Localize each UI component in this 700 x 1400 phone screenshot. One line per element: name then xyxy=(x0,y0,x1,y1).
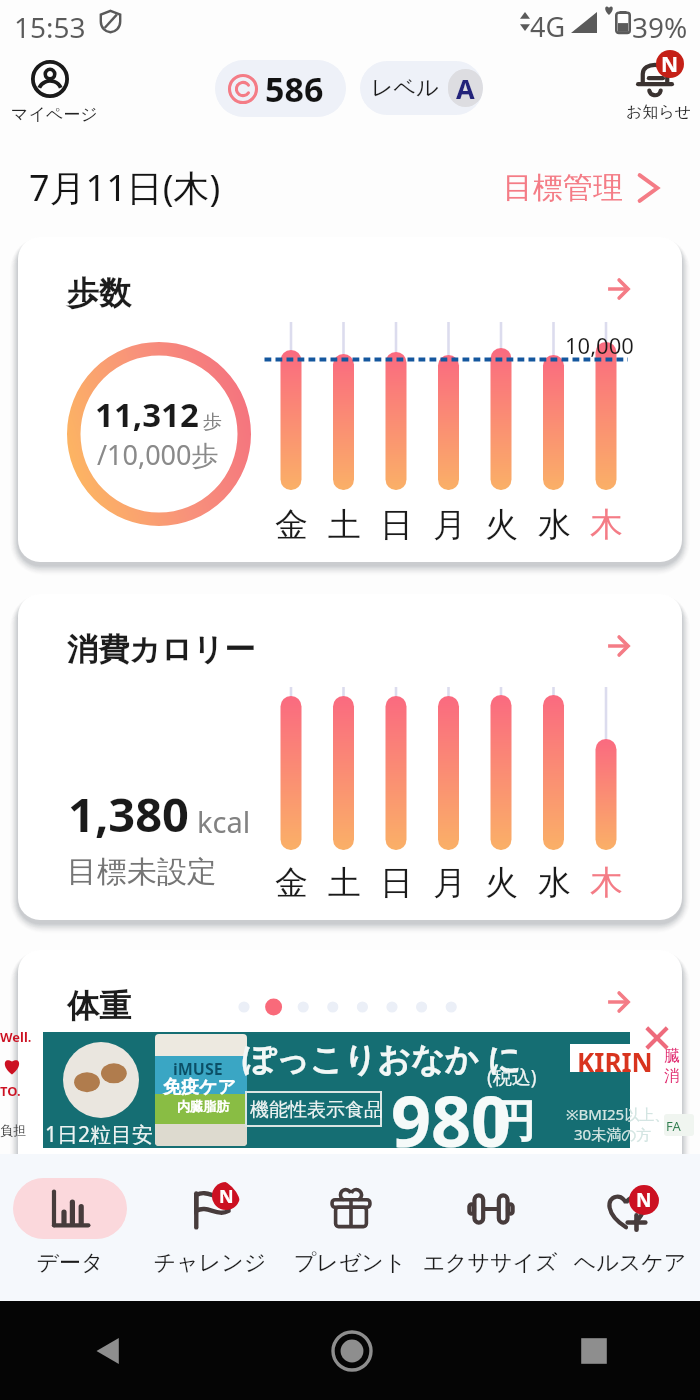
staticText: 機能性表示食品 xyxy=(250,1098,383,1122)
staticText: FA xyxy=(666,1117,681,1135)
staticText: 円 xyxy=(491,1094,535,1149)
button[interactable]: 目標管理 xyxy=(496,162,676,214)
staticText: 火 xyxy=(485,504,518,546)
staticText: 1日2粒目安 xyxy=(45,1120,154,1149)
staticText: (税込) xyxy=(487,1064,537,1090)
staticText: ※BMI25以上、 xyxy=(566,1104,670,1124)
button[interactable]: Recents xyxy=(578,1335,610,1367)
staticText: ヘルスケア xyxy=(545,1249,700,1277)
staticText: お知らせ xyxy=(626,102,692,122)
staticText: N xyxy=(636,1187,652,1213)
staticText: kcal xyxy=(197,802,251,841)
staticText: TO. xyxy=(0,1082,21,1100)
staticText: 980 xyxy=(391,1072,512,1167)
staticText: 歩 xyxy=(203,410,222,434)
staticText: Well. xyxy=(0,1028,32,1046)
staticText: 木 xyxy=(590,862,623,904)
staticText: N xyxy=(219,1184,234,1209)
button[interactable]: Home xyxy=(330,1329,374,1373)
button[interactable]: プレゼント xyxy=(280,1154,420,1301)
staticText: 火 xyxy=(485,862,518,904)
staticText: 消費カロリー xyxy=(67,630,256,669)
staticText: プレゼント xyxy=(265,1249,435,1277)
button[interactable]: エクササイズ xyxy=(420,1154,560,1301)
staticText: 体重 xyxy=(67,986,131,1026)
button[interactable]: データ xyxy=(0,1154,140,1301)
staticText: 15:53 xyxy=(14,8,86,46)
button[interactable]: N xyxy=(140,1154,280,1301)
staticText: チャレンジ xyxy=(125,1249,295,1277)
staticText: 臓 xyxy=(664,1046,680,1066)
button[interactable]: 詳細 xyxy=(596,624,640,668)
button[interactable]: マイページ xyxy=(8,52,100,136)
staticText: 歩数 xyxy=(67,273,131,313)
staticText: 10,000 xyxy=(565,330,634,360)
staticText: KIRIN xyxy=(577,1044,653,1072)
staticText: 免疫ケア xyxy=(163,1076,236,1099)
staticText: 11,312 xyxy=(95,392,199,437)
button[interactable]: お知らせ xyxy=(612,50,700,136)
staticText: 月 xyxy=(433,504,466,546)
staticText: エクササイズ xyxy=(405,1249,575,1277)
button[interactable]: Back xyxy=(90,1333,126,1369)
staticText: 土 xyxy=(328,504,361,546)
staticText: iMUSE xyxy=(173,1058,223,1080)
staticText: 水 xyxy=(538,504,571,546)
staticText: 内臓脂肪 xyxy=(177,1098,229,1114)
button[interactable]: 閉じる xyxy=(641,1022,673,1054)
staticText: 日 xyxy=(380,504,413,546)
staticText: 586 xyxy=(265,66,324,112)
staticText: 7月11日(木) xyxy=(29,163,221,212)
staticText: N xyxy=(661,50,679,78)
button[interactable]: レベル xyxy=(360,61,483,115)
button[interactable]: 消費カロリー xyxy=(18,594,682,920)
staticText: 月 xyxy=(433,862,466,904)
staticText: 39% xyxy=(632,8,688,46)
staticText: 目標管理 xyxy=(503,169,623,207)
staticText: 目標未設定 xyxy=(67,853,217,891)
staticText: ぽっこりおなか に xyxy=(242,1036,521,1081)
button[interactable]: 体重 xyxy=(18,950,682,1190)
staticText: データ xyxy=(0,1249,155,1277)
staticText: 木 xyxy=(590,504,623,546)
button[interactable]: 詳細 xyxy=(596,980,640,1024)
staticText: マイページ xyxy=(11,104,98,125)
button[interactable]: N xyxy=(560,1154,700,1301)
button[interactable]: 1日2粒目安 xyxy=(43,1032,630,1148)
button[interactable]: 詳細 xyxy=(596,267,640,311)
button[interactable]: 歩数 xyxy=(18,237,682,562)
staticText: 負担 xyxy=(0,1122,26,1138)
staticText: 金 xyxy=(275,504,308,546)
staticText: A xyxy=(456,70,475,107)
staticText: 水 xyxy=(538,862,571,904)
staticText: 土 xyxy=(328,862,361,904)
staticText: レベル xyxy=(371,74,439,102)
staticText: 4G xyxy=(530,8,566,45)
staticText: 1,380 xyxy=(68,782,189,846)
staticText: 消 xyxy=(664,1066,680,1086)
staticText: 日 xyxy=(380,862,413,904)
staticText: 金 xyxy=(275,862,308,904)
staticText: 30未満の方 xyxy=(574,1124,652,1144)
staticText: /10,000歩 xyxy=(97,436,219,473)
button[interactable]: 586 xyxy=(215,60,346,117)
